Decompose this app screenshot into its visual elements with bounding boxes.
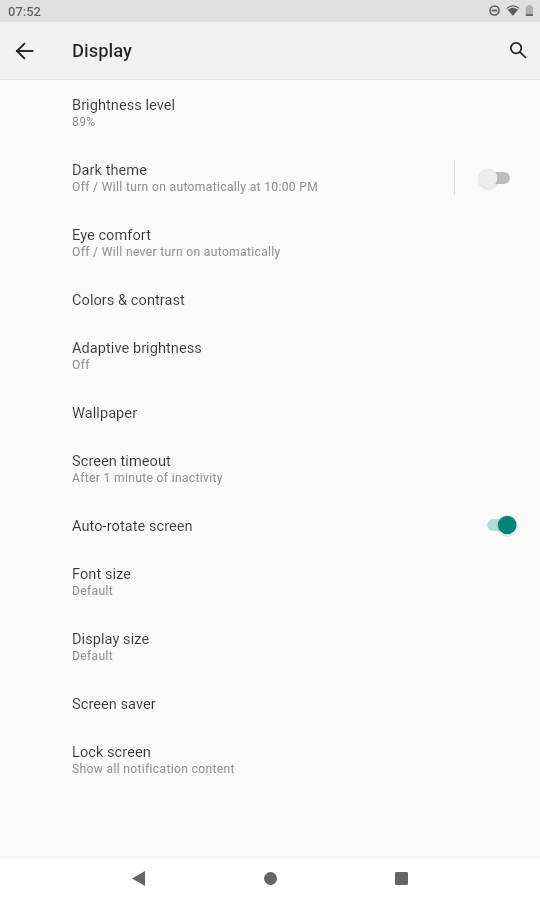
button[interactable]: Dark theme [0, 145, 540, 210]
staticText: Display [72, 40, 133, 62]
button[interactable]: Screen saver [0, 679, 540, 727]
button[interactable]: Wallpaper [0, 388, 540, 436]
button[interactable]: Eye comfort [0, 210, 540, 275]
staticText: Screen timeout [72, 452, 171, 469]
button[interactable]: Auto-rotate screen [474, 504, 518, 546]
staticText: Default [72, 584, 114, 598]
staticText: Adaptive brightness [72, 339, 202, 356]
staticText: Brightness level [72, 96, 176, 113]
button[interactable]: Lock screen [0, 727, 540, 792]
button[interactable]: Brightness level [0, 80, 540, 145]
button[interactable]: Font size [0, 549, 540, 614]
button[interactable]: Dark theme [474, 157, 518, 199]
button[interactable]: Adaptive brightness [0, 323, 540, 388]
staticText: Lock screen [72, 743, 151, 760]
button[interactable]: Back [116, 857, 160, 900]
staticText: Wallpaper [72, 404, 138, 421]
button[interactable]: Search [500, 33, 536, 69]
button[interactable]: Home [248, 857, 292, 900]
staticText: Display size [72, 630, 150, 647]
staticText: 89% [72, 115, 96, 129]
staticText: 07:52 [8, 4, 42, 19]
staticText: Off / Will turn on automatically at 10:0… [72, 180, 319, 194]
button[interactable]: Auto-rotate screen [0, 501, 540, 549]
staticText: Font size [72, 565, 131, 582]
staticText: Screen saver [72, 695, 156, 712]
button[interactable]: Back [9, 35, 41, 67]
staticText: Default [72, 649, 114, 663]
staticText: After 1 minute of inactivity [72, 471, 223, 485]
button[interactable]: Screen timeout [0, 436, 540, 501]
staticText: Show all notification content [72, 762, 235, 776]
staticText: Eye comfort [72, 226, 151, 243]
staticText: Colors & contrast [72, 291, 185, 308]
button[interactable]: Display size [0, 614, 540, 679]
button[interactable]: Recent apps [379, 857, 423, 900]
staticText: Off / Will never turn on automatically [72, 245, 281, 259]
button[interactable]: Colors & contrast [0, 275, 540, 323]
staticText: Off [72, 358, 90, 372]
staticText: Dark theme [72, 161, 147, 178]
staticText: Auto-rotate screen [72, 517, 193, 534]
